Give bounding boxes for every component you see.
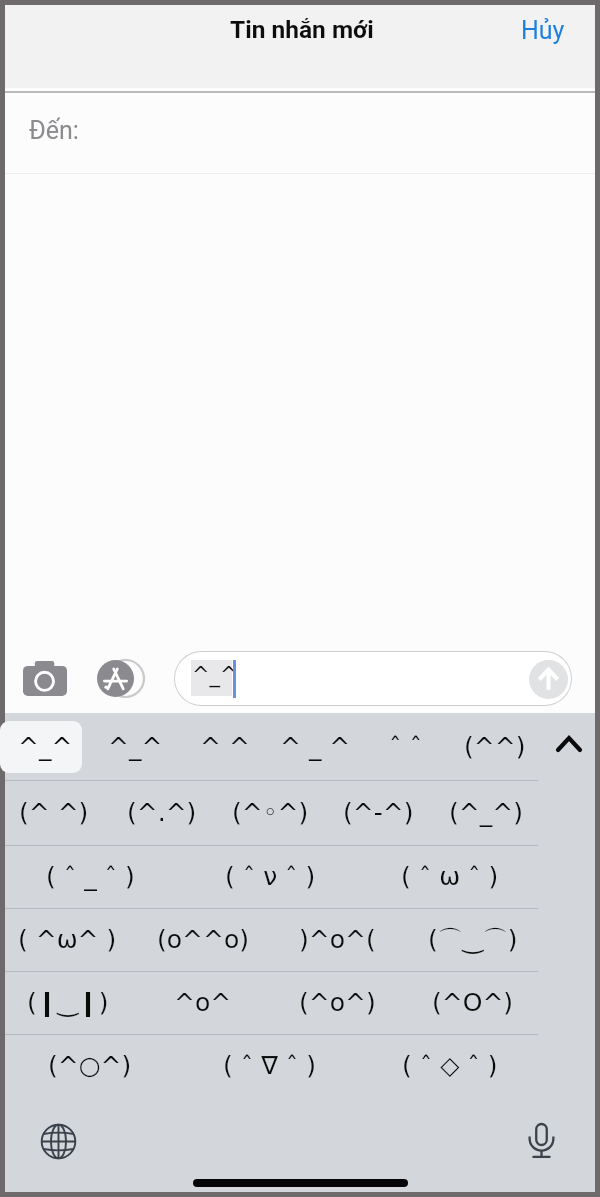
staticText: ( ˆ _ ˆ )	[46, 862, 135, 891]
button[interactable]: ( ˆ ∇ ˆ )	[180, 1034, 360, 1097]
button[interactable]: ^_^	[174, 651, 572, 706]
button[interactable]: )^o^(	[270, 908, 405, 971]
staticText: ^ ^	[200, 732, 250, 761]
button[interactable]: (^◦^)	[216, 780, 324, 845]
button[interactable]: App Store	[95, 653, 145, 703]
button[interactable]: ^_^	[90, 713, 180, 780]
button[interactable]: Hủy	[501, 8, 585, 52]
button[interactable]: (^o^)	[270, 971, 405, 1034]
button[interactable]: (^O^)	[405, 971, 540, 1034]
staticText: (^_^)	[449, 798, 523, 827]
staticText: ^ _ ^	[280, 732, 351, 761]
staticText: ( ˆ ν ˆ )	[225, 862, 316, 891]
staticText: (❙‿❙)	[27, 988, 109, 1017]
staticText: ^_^	[108, 732, 163, 761]
staticText: (^-^)	[343, 798, 414, 827]
button[interactable]: ^o^	[135, 971, 270, 1034]
button[interactable]: ( ˆ ν ˆ )	[180, 845, 360, 908]
staticText: ( ˆ ∇ ˆ )	[223, 1051, 317, 1080]
staticText: Tin nhắn mới	[230, 15, 374, 44]
button[interactable]: (^_^)	[432, 780, 540, 845]
staticText: ( ˆ ◇ ˆ )	[402, 1051, 498, 1080]
staticText: )^o^(	[299, 925, 376, 954]
button[interactable]: (^^)	[450, 713, 540, 780]
button[interactable]: ( ˆ _ ˆ )	[0, 845, 180, 908]
button[interactable]: (^-^)	[324, 780, 432, 845]
staticText: ˆ ˆ	[389, 732, 422, 761]
staticText: (^○^)	[48, 1051, 132, 1080]
button[interactable]: (^○^)	[0, 1034, 180, 1097]
staticText: Đến:	[29, 116, 79, 145]
staticText: (⌒‿⌒)	[428, 924, 518, 955]
button[interactable]: (⌒‿⌒)	[405, 908, 540, 971]
button[interactable]: Expand suggestions	[543, 713, 600, 780]
button[interactable]: (^.^)	[108, 780, 216, 845]
button[interactable]: ( ˆ ω ˆ )	[360, 845, 540, 908]
button[interactable]: Camera	[20, 653, 70, 703]
button[interactable]: ˆ ˆ	[360, 713, 450, 780]
staticText: ( ^ω^ )	[18, 925, 117, 954]
button[interactable]: (❙‿❙)	[0, 971, 135, 1034]
staticText: (^O^)	[432, 988, 514, 1017]
button[interactable]: ( ^ω^ )	[0, 908, 135, 971]
staticText: (^◦^)	[232, 798, 309, 827]
staticText: (^ ^)	[19, 798, 89, 827]
staticText: (^.^)	[127, 798, 197, 827]
button[interactable]: ( ˆ ◇ ˆ )	[360, 1034, 540, 1097]
button[interactable]: ^ _ ^	[270, 713, 360, 780]
button[interactable]: ^ ^	[180, 713, 270, 780]
staticText: (o^^o)	[157, 925, 249, 954]
staticText: ( ˆ ω ˆ )	[401, 862, 499, 891]
button[interactable]: Switch keyboard	[34, 1117, 82, 1165]
button[interactable]: ^_^	[0, 713, 90, 780]
staticText: ^_^	[18, 732, 73, 761]
button[interactable]: Send	[529, 660, 568, 699]
button[interactable]: Dictation	[517, 1117, 565, 1165]
staticText: ^_^	[192, 663, 238, 687]
staticText: Hủy	[521, 16, 565, 45]
button[interactable]: Đến:	[5, 93, 595, 173]
button[interactable]: (o^^o)	[135, 908, 270, 971]
staticText: (^o^)	[299, 988, 376, 1017]
button[interactable]: (^ ^)	[0, 780, 108, 845]
staticText: (^^)	[464, 732, 526, 761]
staticText: ^o^	[174, 988, 232, 1017]
